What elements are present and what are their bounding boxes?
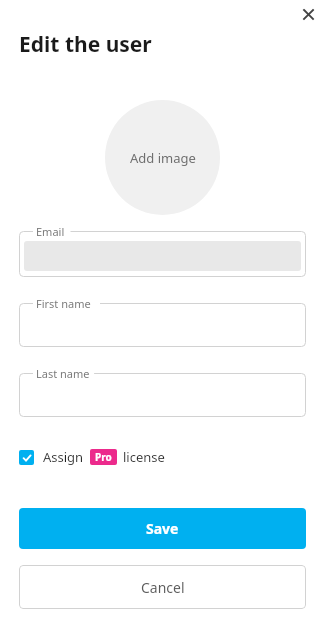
staticText: First name: [36, 296, 91, 311]
button[interactable]: Email: [19, 231, 306, 277]
staticText: Pro: [95, 450, 112, 464]
button[interactable]: First name: [19, 303, 306, 347]
staticText: Edit the user: [19, 30, 152, 59]
button[interactable]: Assign: [19, 447, 165, 467]
button[interactable]: Last name: [19, 373, 306, 417]
staticText: Last name: [36, 366, 90, 381]
staticText: license: [123, 448, 165, 466]
staticText: Add image: [130, 149, 196, 167]
button[interactable]: Save: [19, 508, 306, 549]
button[interactable]: Cancel: [19, 565, 306, 609]
button[interactable]: Close: [296, 2, 320, 26]
staticText: Cancel: [141, 578, 185, 597]
button[interactable]: Add image: [105, 100, 220, 215]
staticText: Email: [36, 224, 65, 239]
staticText: Save: [146, 519, 179, 538]
staticText: Assign: [43, 448, 84, 466]
